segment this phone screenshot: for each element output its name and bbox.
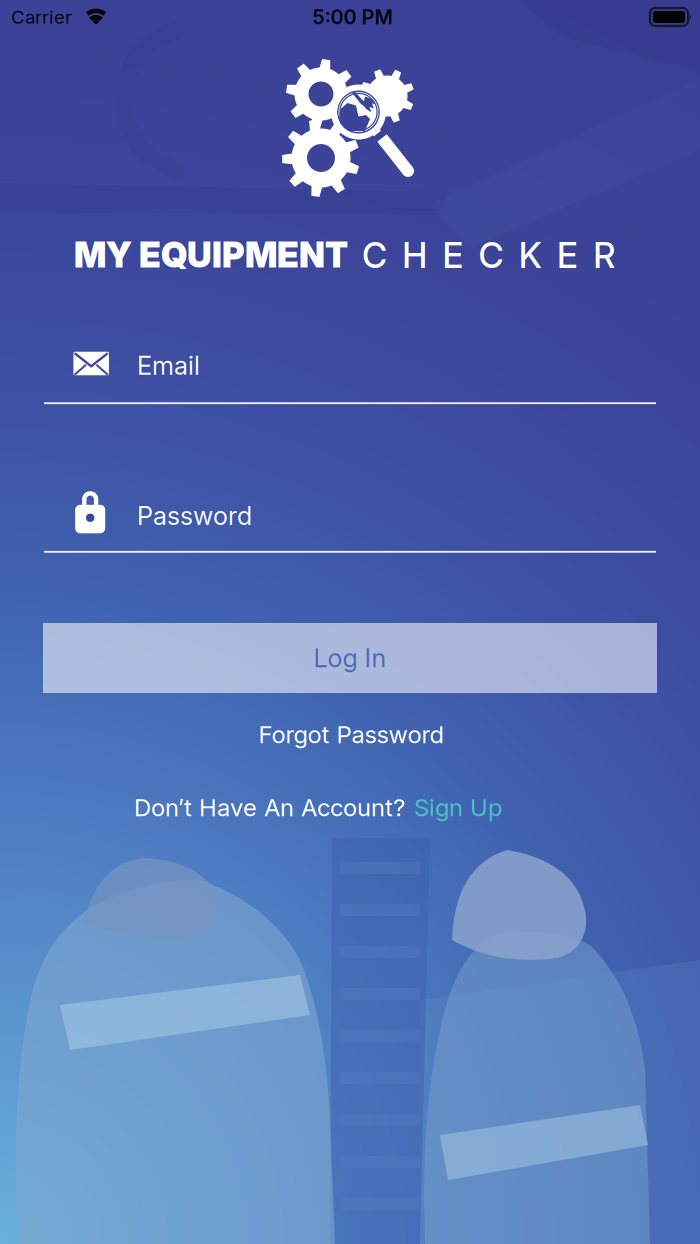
staticText: MY EQUIPMENT <box>74 235 348 275</box>
staticText: Don’t Have An Account? <box>134 793 405 822</box>
button[interactable]: Password <box>40 487 660 557</box>
staticText: Carrier <box>11 6 72 28</box>
staticText: 5:00 PM <box>312 5 392 29</box>
staticText: Log In <box>313 643 386 673</box>
button[interactable]: Email <box>40 337 660 407</box>
staticText: Forgot Password <box>258 720 443 749</box>
staticText: C H E C K E R <box>362 235 615 276</box>
button[interactable]: Log In <box>43 623 657 693</box>
staticText: Email <box>137 351 200 380</box>
staticText: Sign Up <box>414 793 502 822</box>
button[interactable]: Sign Up <box>414 793 502 822</box>
button[interactable]: Forgot Password <box>246 714 455 755</box>
staticText: Password <box>137 501 252 531</box>
